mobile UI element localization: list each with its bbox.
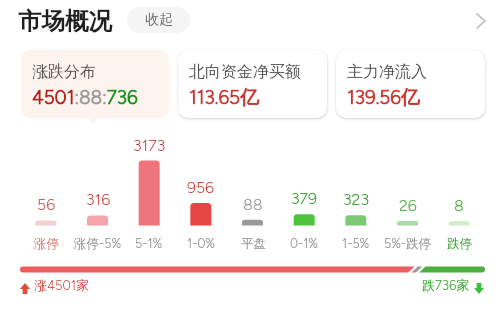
staticText: 3173 — [133, 136, 166, 155]
staticText: 4501:88:736 — [32, 86, 138, 109]
button[interactable]: 北向资金净买额 — [178, 50, 327, 118]
staticText: 88 — [243, 195, 263, 214]
staticText: 56 — [37, 195, 56, 214]
staticText: 平盘 — [241, 236, 266, 252]
staticText: 跌停 — [447, 236, 472, 252]
staticText: 涨停-5% — [74, 236, 122, 252]
staticText: 26 — [399, 196, 417, 215]
staticText: 主力净流入 — [347, 62, 427, 82]
staticText: 956 — [187, 178, 215, 197]
button[interactable]: 查看更多 — [466, 6, 496, 36]
staticText: 316 — [86, 190, 111, 209]
button[interactable]: 主力净流入 — [336, 50, 485, 118]
staticText: 1-5% — [342, 236, 370, 251]
button[interactable]: 涨跌分布 — [21, 50, 169, 118]
staticText: 113.65亿 — [189, 86, 259, 110]
staticText: 市场概况 — [18, 6, 112, 36]
staticText: 北向资金净买额 — [189, 62, 301, 82]
staticText: 涨4501家 — [34, 277, 90, 293]
button[interactable]: 涨4501家 — [20, 277, 90, 293]
staticText: 涨停 — [34, 236, 59, 252]
staticText: 涨跌分布 — [32, 62, 96, 82]
staticText: 0-1% — [290, 236, 319, 251]
staticText: 5%-跌停 — [384, 236, 432, 252]
staticText: 收起 — [145, 11, 173, 29]
staticText: 8 — [454, 196, 464, 215]
staticText: 5-1% — [135, 236, 163, 251]
staticText: 跌736家 — [422, 277, 470, 293]
button[interactable]: 收起 — [127, 7, 190, 33]
staticText: 323 — [343, 190, 370, 209]
button[interactable]: 跌736家 — [422, 277, 484, 293]
staticText: 1-0% — [187, 236, 216, 251]
staticText: 379 — [291, 189, 318, 208]
staticText: 139.56亿 — [347, 86, 420, 110]
